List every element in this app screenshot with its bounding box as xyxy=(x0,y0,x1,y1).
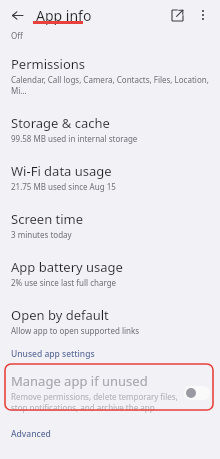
staticText: 3 minutes today xyxy=(11,229,72,240)
button[interactable]: Manage app if unused xyxy=(0,363,220,422)
staticText: 21.75 MB used since Aug 15 xyxy=(11,181,116,192)
staticText: Allow app to open supported links xyxy=(11,325,140,336)
staticText: Wi-Fi data usage xyxy=(11,162,112,180)
staticText: Manage app if unused xyxy=(11,372,148,390)
staticText: 99.58 MB used in internal storage xyxy=(11,133,138,144)
button[interactable]: Wi-Fi data usage xyxy=(0,155,220,203)
button[interactable]: Storage & cache xyxy=(0,107,220,155)
staticText: Screen time xyxy=(11,210,84,228)
staticText: Unused app settings xyxy=(11,348,95,360)
button[interactable]: Permissions xyxy=(0,48,220,107)
button[interactable]: App battery usage xyxy=(0,251,220,299)
staticText: Advanced xyxy=(11,428,51,440)
button[interactable]: Manage app if unused toggle xyxy=(184,386,210,400)
staticText: App battery usage xyxy=(11,258,123,276)
staticText: Calendar, Call logs, Camera, Contacts, F… xyxy=(11,74,210,96)
button[interactable]: Back xyxy=(6,4,28,26)
staticText: App info xyxy=(36,6,92,25)
staticText: Open by default xyxy=(11,306,109,324)
staticText: Off xyxy=(11,30,23,41)
staticText: 2% use since last full charge xyxy=(11,277,117,288)
button[interactable]: Open in new window xyxy=(165,3,189,27)
button[interactable]: Screen time xyxy=(0,203,220,251)
button[interactable]: Open by default xyxy=(0,299,220,342)
staticText: Permissions xyxy=(11,55,86,73)
staticText: Storage & cache xyxy=(11,114,110,132)
staticText: Remove permissions, delete temporary fil… xyxy=(11,391,178,413)
button[interactable]: More options xyxy=(191,3,215,27)
